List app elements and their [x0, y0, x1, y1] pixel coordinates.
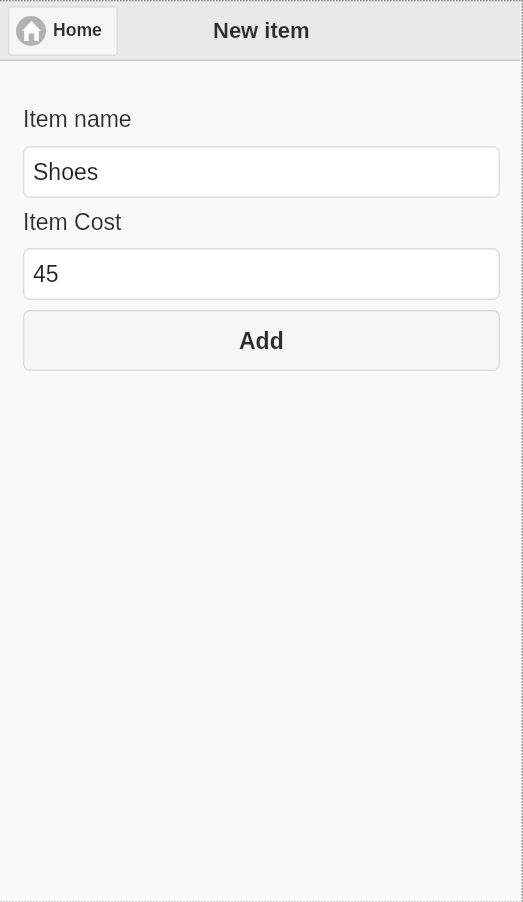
button[interactable]: Add [23, 310, 500, 371]
staticText: Item Cost [23, 209, 122, 235]
staticText: 45 [33, 261, 59, 287]
staticText: Shoes [33, 159, 99, 185]
button[interactable]: Item Cost [23, 248, 500, 300]
staticText: Item name [23, 106, 132, 132]
staticText: Home [53, 20, 102, 40]
staticText: Add [239, 328, 284, 354]
button[interactable]: Item name [23, 146, 500, 198]
button[interactable]: Home [8, 6, 118, 56]
staticText: New item [213, 18, 310, 43]
